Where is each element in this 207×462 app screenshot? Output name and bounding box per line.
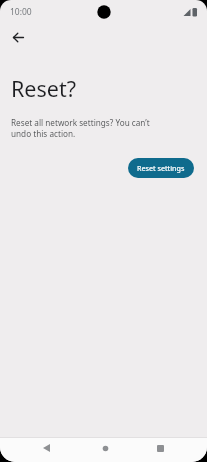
button[interactable]: Reset settings: [128, 158, 194, 178]
button[interactable]: [150, 438, 170, 458]
staticText: Reset?: [11, 74, 77, 103]
staticText: Reset all network settings? You can’t un…: [11, 117, 150, 140]
staticText: 10:00: [10, 6, 32, 18]
button[interactable]: [36, 438, 56, 458]
staticText: Reset settings: [137, 163, 185, 173]
button[interactable]: [95, 438, 115, 458]
button[interactable]: [8, 27, 28, 47]
